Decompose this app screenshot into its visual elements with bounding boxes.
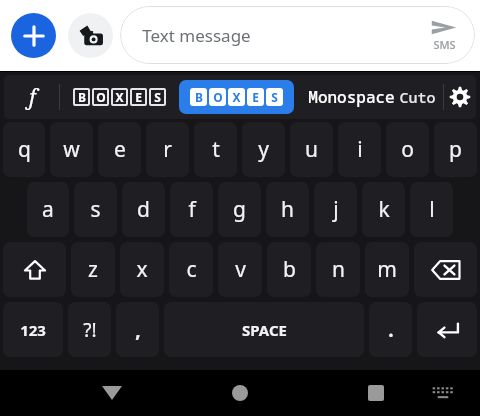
button[interactable]: g [218,182,261,237]
staticText: a [42,195,54,224]
staticText: q [18,135,31,164]
button[interactable]: Settings [444,75,476,119]
button[interactable]: z [71,242,115,297]
staticText: SPACE [242,320,287,340]
staticText: B [78,89,86,105]
button[interactable]: ?! [68,302,111,357]
staticText: y [258,135,269,164]
staticText: p [449,135,462,164]
staticText: r [163,135,172,164]
staticText: i [357,135,363,164]
button[interactable]: x [120,242,164,297]
staticText: v [235,255,246,284]
button[interactable]: l [410,182,453,237]
staticText: X [232,89,241,105]
button[interactable]: i [338,122,381,177]
staticText: z [88,255,98,284]
staticText: Cuto [399,87,436,107]
button[interactable]: Fonts [4,75,59,119]
button[interactable]: n [316,242,360,297]
button[interactable]: Recent apps [352,370,400,416]
button[interactable]: t [194,122,237,177]
button[interactable]: Shift [3,242,66,297]
staticText: ?! [83,317,97,343]
button[interactable]: r [146,122,189,177]
staticText: g [233,195,246,224]
staticText: b [283,255,296,284]
button[interactable]: e [98,122,141,177]
button[interactable]: k [362,182,405,237]
button[interactable]: . [369,302,412,357]
button[interactable]: q [3,122,45,177]
staticText: O [213,89,223,105]
staticText: s [90,195,101,224]
button[interactable]: y [242,122,285,177]
button[interactable]: h [266,182,309,237]
staticText: S [154,89,161,105]
button[interactable]: o [386,122,429,177]
staticText: 123 [20,320,46,340]
button[interactable]: Home [216,370,264,416]
staticText: h [281,195,294,224]
staticText: o [401,135,414,164]
button[interactable]: b [267,242,311,297]
button[interactable]: m [365,242,409,297]
staticText: S [271,89,278,105]
staticText: t [212,135,220,164]
staticText: n [332,255,345,284]
staticText: k [378,195,390,224]
staticText: , [135,317,141,343]
staticText: ƒ [27,83,36,112]
button[interactable]: SPACE [164,302,364,357]
staticText: Text message [142,24,251,47]
staticText: SMS [433,37,456,52]
staticText: E [135,89,142,105]
button[interactable]: Text message [120,6,475,64]
button[interactable]: p [434,122,477,177]
staticText: u [305,135,318,164]
button[interactable]: Backspace [414,242,477,297]
button[interactable]: B [179,80,294,114]
staticText: . [388,317,394,343]
button[interactable]: , [116,302,159,357]
staticText: X [115,89,124,105]
staticText: j [333,195,339,224]
button[interactable]: Switch keyboard [423,370,463,416]
staticText: f [188,195,196,224]
staticText: m [377,255,397,284]
button[interactable]: Add attachment [11,13,56,58]
button[interactable]: a [27,182,69,237]
button[interactable]: Enter [417,302,477,357]
button[interactable]: c [169,242,213,297]
button[interactable]: j [314,182,357,237]
button[interactable]: 123 [3,302,63,357]
button[interactable]: Back [88,370,136,416]
button[interactable]: B [66,81,173,113]
button[interactable]: Cuto [399,75,443,119]
button[interactable]: v [218,242,262,297]
button[interactable]: s [74,182,117,237]
staticText: B [195,89,203,105]
staticText: c [186,255,197,284]
staticText: O [96,89,106,105]
button[interactable]: d [122,182,165,237]
staticText: x [136,255,148,284]
staticText: l [429,195,435,224]
button[interactable]: w [50,122,93,177]
button[interactable]: f [170,182,213,237]
staticText: e [114,135,126,164]
staticText: w [63,135,80,164]
button[interactable]: u [290,122,333,177]
staticText: E [252,89,259,105]
button[interactable]: Send SMS [431,19,457,52]
staticText: Monospace [308,86,395,108]
staticText: d [137,195,150,224]
button[interactable]: Camera [68,13,113,58]
button[interactable]: Monospace [304,80,399,114]
